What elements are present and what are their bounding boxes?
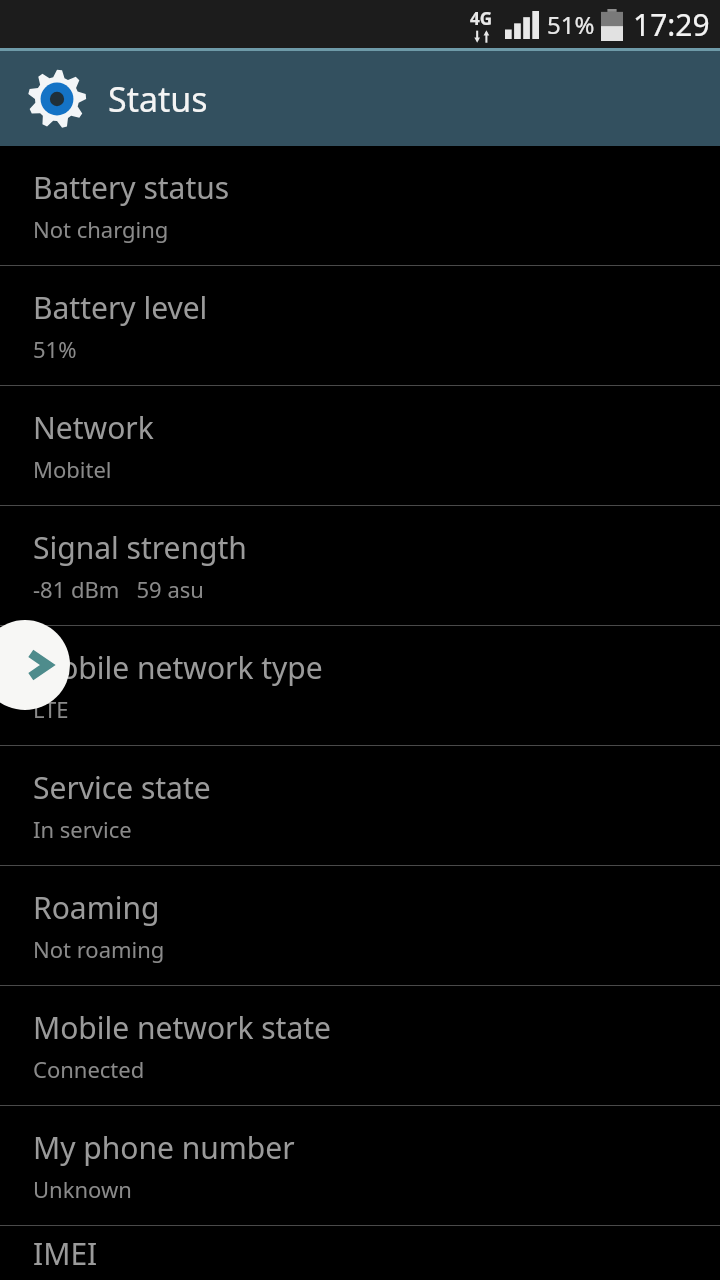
button[interactable]: My phone number [0,1105,720,1225]
button[interactable]: Mobile network type [0,625,720,745]
staticText: Roaming [33,887,160,928]
button[interactable]: Service state [0,745,720,865]
staticText: Mobitel [33,454,112,484]
staticText: Battery level [33,287,208,328]
staticText: IMEI [33,1233,98,1274]
staticText: 51% [547,8,595,41]
button[interactable]: Roaming [0,865,720,985]
button[interactable]: Mobile network state [0,985,720,1105]
staticText: My phone number [33,1127,295,1168]
button[interactable]: Status [0,51,720,146]
staticText: Service state [33,767,211,808]
button[interactable]: Open navigation drawer [0,620,70,710]
staticText: Not charging [33,214,169,244]
staticText: 17:29 [633,4,710,45]
staticText: 51% [33,334,77,364]
staticText: Signal strength [33,527,247,568]
staticText: Network [33,407,154,448]
staticText: Not roaming [33,934,165,964]
staticText: -81 dBm 59 asu [33,574,204,604]
button[interactable]: Signal strength [0,505,720,625]
button[interactable]: Battery status [0,146,720,265]
staticText: 4G [470,7,493,30]
staticText: Connected [33,1054,145,1084]
staticText: In service [33,814,132,844]
button[interactable]: IMEI [0,1225,720,1280]
staticText: Battery status [33,167,230,208]
button[interactable]: Battery level [0,265,720,385]
staticText: LTE [33,694,69,724]
staticText: Mobile network type [33,647,323,688]
button[interactable]: Network [0,385,720,505]
staticText: Unknown [33,1174,132,1204]
staticText: Mobile network state [33,1007,332,1048]
staticText: Status [108,76,208,122]
